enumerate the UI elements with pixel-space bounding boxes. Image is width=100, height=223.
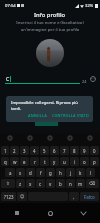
button[interactable]: j <box>66 168 75 177</box>
button[interactable]: 1 <box>1 146 9 155</box>
staticText: d <box>29 170 32 176</box>
button[interactable]: Strumento tastiera <box>60 133 80 143</box>
button[interactable]: Emoji <box>90 76 96 82</box>
staticText: 6 <box>53 148 56 154</box>
button[interactable]: Foto profilo <box>36 39 64 67</box>
staticText: 2 <box>13 148 16 154</box>
button[interactable]: 9 <box>80 146 89 155</box>
staticText: g <box>49 170 52 176</box>
button[interactable]: b <box>56 179 65 188</box>
button[interactable]: m <box>76 179 85 188</box>
button[interactable]: h <box>56 168 65 177</box>
staticText: 0 <box>93 148 96 154</box>
button[interactable]: x <box>26 179 35 188</box>
button[interactable]: 0 <box>90 146 99 155</box>
button[interactable]: s <box>16 168 25 177</box>
button[interactable]: Fatto <box>80 192 99 201</box>
staticText: Impossibile collegarsi. Riprova più tard… <box>11 100 89 112</box>
button[interactable]: Strumento tastiera <box>40 133 60 143</box>
button[interactable]: w <box>10 157 19 166</box>
button[interactable]: ☺ <box>17 192 27 201</box>
button[interactable]: u <box>60 157 69 166</box>
staticText: , <box>73 194 75 200</box>
staticText: e <box>23 159 26 165</box>
staticText: CONTROLLA STATO <box>52 113 89 118</box>
button[interactable]: 7 <box>60 146 69 155</box>
button[interactable]: ?123 <box>1 192 16 201</box>
staticText: h <box>59 170 62 176</box>
staticText: t <box>44 159 46 165</box>
staticText: u <box>63 159 66 165</box>
button[interactable]: i <box>70 157 79 166</box>
button[interactable]: p <box>90 157 99 166</box>
staticText: s <box>19 170 22 176</box>
button[interactable]: Strumento tastiera <box>80 133 100 143</box>
button[interactable]: z <box>16 179 25 188</box>
staticText: 3 <box>23 148 26 154</box>
button[interactable]: Home <box>34 203 67 223</box>
button[interactable]: CONTROLLA STATO <box>52 113 89 118</box>
staticText: i <box>74 159 76 165</box>
staticText: c <box>39 181 42 187</box>
button[interactable]: 8 <box>70 146 79 155</box>
staticText: 07:54 <box>5 3 16 9</box>
button[interactable]: e <box>20 157 29 166</box>
staticText: Fatto <box>84 194 95 200</box>
staticText: ?123 <box>4 194 14 200</box>
button[interactable]: q <box>1 157 9 166</box>
button[interactable]: 4 <box>30 146 39 155</box>
button[interactable]: a <box>5 168 15 177</box>
staticText: 8 <box>73 148 76 154</box>
staticText: b <box>59 181 62 187</box>
button[interactable]: g <box>46 168 55 177</box>
button[interactable]: n <box>66 179 75 188</box>
button[interactable]: f <box>36 168 45 177</box>
staticText: 9 <box>83 148 86 154</box>
button[interactable]: k <box>76 168 85 177</box>
button[interactable]: y <box>50 157 59 166</box>
staticText: ⇧ <box>6 181 10 186</box>
staticText: v <box>49 181 52 187</box>
button[interactable]: ⇧ <box>1 179 15 188</box>
button[interactable]: v <box>46 179 55 188</box>
button[interactable]: l <box>86 168 95 177</box>
button[interactable]: c <box>36 179 45 188</box>
staticText: 5 <box>43 148 46 154</box>
button[interactable]: ⌫ <box>86 179 99 188</box>
staticText: 4 <box>33 148 36 154</box>
staticText: ⌫ <box>89 181 96 186</box>
staticText: f <box>40 170 42 176</box>
staticText: w <box>13 159 17 165</box>
staticText: 24 <box>82 79 87 84</box>
staticText: p <box>93 159 96 165</box>
button[interactable]: 5 <box>40 146 49 155</box>
staticText: a <box>9 170 12 176</box>
button[interactable]: Nascondi tastiera <box>67 203 100 223</box>
button[interactable]: Strumento tastiera <box>20 133 40 143</box>
staticText: z <box>19 181 22 187</box>
button[interactable]: t <box>40 157 49 166</box>
staticText: 32% <box>85 3 94 9</box>
button[interactable]: , <box>69 192 79 201</box>
staticText: 1 <box>4 148 7 154</box>
button[interactable]: 2 <box>10 146 19 155</box>
button[interactable]: Indietro <box>0 203 34 223</box>
staticText: k <box>79 170 82 176</box>
button[interactable]: ANNULLA <box>28 113 47 118</box>
staticText: o <box>83 159 86 165</box>
button[interactable]: r <box>30 157 39 166</box>
button[interactable]: d <box>26 168 35 177</box>
staticText: ANNULLA <box>28 113 47 118</box>
staticText: ☺ <box>20 194 25 199</box>
button[interactable]: o <box>80 157 89 166</box>
button[interactable]: 3 <box>20 146 29 155</box>
staticText: m <box>78 181 83 187</box>
staticText: x <box>29 181 32 187</box>
staticText: C <box>6 75 10 82</box>
staticText: y <box>53 159 56 165</box>
staticText: Inserisci il tuo nome e (facoltativo) un… <box>3 20 97 32</box>
button[interactable]: 6 <box>50 146 59 155</box>
staticText: 7 <box>63 148 66 154</box>
button[interactable]: Strumento tastiera <box>0 133 20 143</box>
